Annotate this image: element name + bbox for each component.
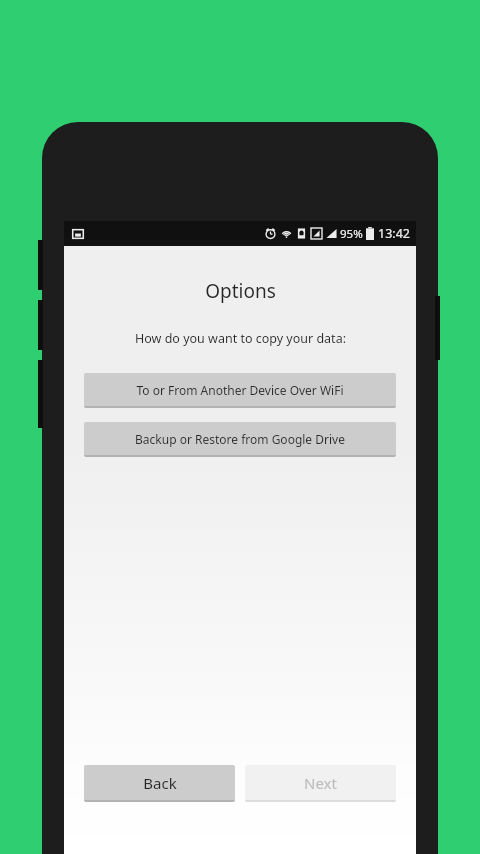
staticText: To or From Another Device Over WiFi xyxy=(136,382,344,398)
staticText: Backup or Restore from Google Drive xyxy=(135,431,345,447)
button[interactable]: Backup or Restore from Google Drive xyxy=(84,422,396,457)
staticText: 13:42 xyxy=(378,225,410,242)
staticText: 95% xyxy=(340,226,363,242)
staticText: Back xyxy=(143,773,177,793)
button[interactable]: To or From Another Device Over WiFi xyxy=(84,373,396,408)
staticText: Next xyxy=(304,773,337,793)
button[interactable]: Back xyxy=(84,765,235,802)
staticText: Options xyxy=(205,278,276,304)
button[interactable]: Next xyxy=(245,765,396,802)
staticText: How do you want to copy your data: xyxy=(135,330,346,347)
